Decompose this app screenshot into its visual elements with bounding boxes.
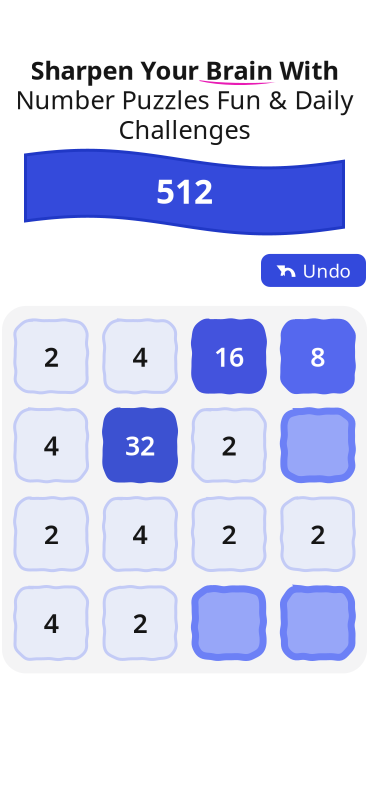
staticText: 2: [221, 427, 236, 463]
staticText: 4: [132, 516, 147, 552]
staticText: 16: [214, 339, 244, 374]
staticText: 2: [132, 605, 147, 641]
staticText: 2: [221, 516, 236, 552]
staticText: 2: [44, 516, 59, 552]
staticText: 2: [310, 516, 325, 552]
staticText: Undo: [302, 258, 350, 283]
staticText: 8: [310, 339, 325, 374]
staticText: 2: [44, 339, 59, 374]
button[interactable]: Undo: [261, 254, 366, 287]
staticText: 4: [44, 605, 59, 641]
staticText: Sharpen Your Brain With: [30, 53, 338, 87]
staticText: Number Puzzles Fun & Daily: [15, 83, 353, 116]
staticText: 512: [156, 169, 213, 213]
staticText: 4: [132, 339, 147, 374]
staticText: 32: [125, 427, 155, 463]
staticText: Challenges: [118, 112, 250, 146]
staticText: 4: [44, 427, 59, 463]
